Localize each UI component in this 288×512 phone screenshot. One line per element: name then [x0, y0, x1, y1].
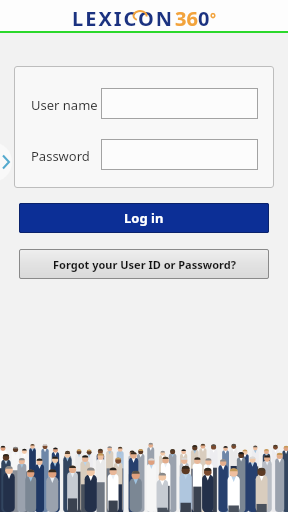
staticText: °: [210, 9, 216, 28]
staticText: 36: [175, 5, 198, 32]
staticText: Password: [31, 147, 90, 165]
staticText: Log in: [124, 209, 164, 227]
staticText: User name: [31, 96, 98, 114]
staticText: Forgot your User ID or Password?: [53, 257, 236, 272]
staticText: LEXICON: [72, 5, 175, 32]
staticText: 0: [198, 5, 210, 32]
